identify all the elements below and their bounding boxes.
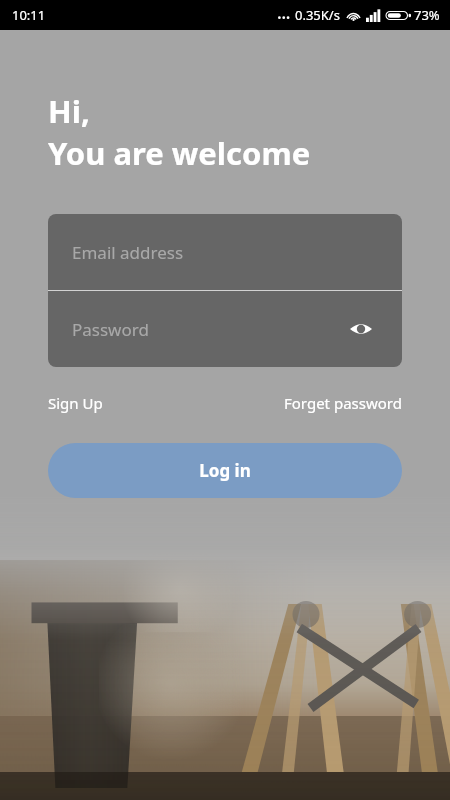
button[interactable]: Forget password: [284, 389, 402, 417]
staticText: Sign Up: [48, 393, 103, 413]
staticText: Email address: [72, 241, 184, 264]
staticText: 0.35K/s: [295, 6, 340, 24]
staticText: 73%: [414, 6, 440, 24]
staticText: Password: [72, 318, 149, 341]
button[interactable]: Email address: [48, 214, 402, 290]
button[interactable]: Sign Up: [48, 389, 103, 417]
staticText: Forget password: [284, 393, 402, 413]
staticText: 10:11: [12, 6, 46, 24]
staticText: Log in: [199, 459, 251, 482]
button[interactable]: Password: [48, 291, 402, 367]
staticText: You are welcome: [48, 132, 311, 174]
button[interactable]: Show password: [344, 312, 378, 346]
button[interactable]: Log in: [48, 443, 402, 498]
staticText: Hi,: [48, 90, 90, 132]
